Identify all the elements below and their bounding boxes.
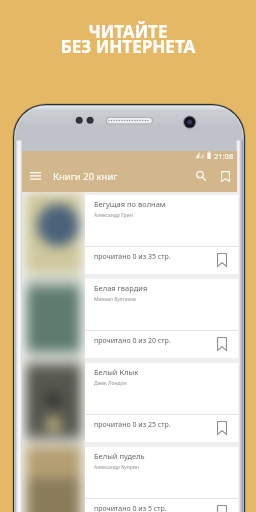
button[interactable]: Search [188,160,214,192]
staticText: Белая гвардия [94,283,148,293]
staticText: Михаил Булгаков [94,296,136,303]
staticText: Джек Лондон [94,380,127,387]
staticText: 21:08 [214,151,234,160]
button[interactable]: Bookmarks [214,160,236,192]
button[interactable]: Add bookmark [213,503,231,512]
button[interactable]: Белый Клык [85,363,238,442]
staticText: Александр Куприн [94,464,139,471]
button[interactable]: Белая гвардия [85,279,238,358]
staticText: прочитано 0 из 25 стр. [94,420,171,430]
staticText: БЕЗ ИНТЕРНЕТА [0,35,256,58]
staticText: прочитано 0 из 35 стр. [94,252,171,262]
staticText: Бегущая по волнам [94,199,166,209]
staticText: прочитано 0 из 5 стр. [94,504,167,512]
staticText: Александр Грин [94,212,133,219]
staticText: Белый пудель [94,451,145,461]
button[interactable]: Open navigation menu [22,160,48,192]
button[interactable]: Бегущая по волнам [85,195,238,274]
button[interactable]: Белый пудель [85,447,238,512]
staticText: прочитано 0 из 20 стр. [94,336,171,346]
staticText: ЧИТАЙТЕ [0,20,256,43]
staticText: Книги 20 книг [53,170,118,183]
button[interactable]: Add bookmark [213,251,231,269]
button[interactable]: Add bookmark [213,419,231,437]
button[interactable]: Add bookmark [213,335,231,353]
staticText: Белый Клык [94,367,139,377]
